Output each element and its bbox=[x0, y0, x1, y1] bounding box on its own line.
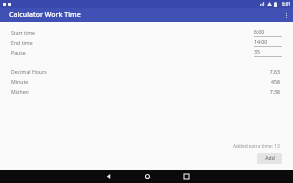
button[interactable]: More options bbox=[279, 8, 293, 22]
staticText: 7.63 bbox=[269, 68, 280, 75]
staticText: 35 bbox=[254, 48, 260, 55]
staticText: Calculator Work Time bbox=[9, 10, 81, 20]
staticText: Minute bbox=[11, 78, 29, 85]
staticText: Add bbox=[265, 155, 275, 162]
button[interactable]: End time bbox=[11, 37, 282, 47]
staticText: 14:00 bbox=[254, 38, 268, 45]
button[interactable]: Minute bbox=[11, 76, 282, 86]
button[interactable]: Start time bbox=[11, 27, 282, 37]
button[interactable]: Back bbox=[95, 170, 121, 183]
button[interactable]: Pause bbox=[11, 47, 282, 57]
staticText: Start time bbox=[11, 29, 35, 36]
staticText: End time bbox=[11, 39, 33, 46]
button[interactable]: Decimal Hours bbox=[11, 66, 282, 76]
button[interactable]: Recent apps bbox=[173, 170, 199, 183]
staticText: 6:01 bbox=[282, 1, 291, 7]
staticText: 7:38 bbox=[269, 88, 280, 95]
staticText: Mizhen bbox=[11, 88, 29, 95]
button[interactable]: Home bbox=[134, 170, 160, 183]
staticText: Pause bbox=[11, 49, 26, 56]
button[interactable]: Mizhen bbox=[11, 86, 282, 96]
staticText: 458 bbox=[271, 78, 280, 85]
staticText: 6:00 bbox=[254, 28, 265, 35]
staticText: Added extra time: 13 bbox=[233, 143, 280, 150]
button[interactable]: Add bbox=[257, 153, 282, 164]
staticText: Decimal Hours bbox=[11, 68, 47, 75]
